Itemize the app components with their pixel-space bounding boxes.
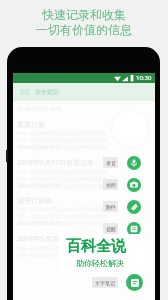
button[interactable]: 文字笔记 (92, 277, 118, 288)
staticText: 附件 (106, 204, 116, 210)
button[interactable]: 拍照 (103, 179, 118, 190)
staticText: 这是一段示例的笔记正文内容文字说明供预览 (17, 246, 107, 252)
staticText: 读书计划表 (17, 196, 52, 205)
button[interactable]: 2018年5月12日 14:30 (17, 106, 114, 152)
staticText: 2018年5月12日 14:30 (17, 144, 62, 150)
staticText: 这是一段示例的笔记正文内容文字说明供预览 (17, 184, 107, 190)
staticText: 10:30 (136, 74, 152, 82)
staticText: 拍照 (106, 182, 116, 188)
staticText: 2018年5月20日清单 (17, 234, 81, 244)
button[interactable]: 2018年5月12日 14:30 (17, 182, 114, 228)
button[interactable]: 2018年5月12日 14:30 (17, 144, 114, 191)
button[interactable]: 录音 (127, 156, 141, 170)
staticText: 2018年5月17日会议记录 (17, 158, 95, 168)
button[interactable]: 安全锁定 (13, 83, 155, 101)
button[interactable]: 拍照 (127, 178, 141, 192)
staticText: 2018年5月12日 14:30 (17, 220, 62, 226)
staticText: 助你轻松解决 (76, 258, 124, 268)
staticText: 录音 (106, 160, 116, 166)
button[interactable]: 文字笔记 (126, 274, 143, 291)
button[interactable]: 提醒 (127, 222, 141, 236)
staticText: 这是一段示例的笔记正文内容文字说明供预览 (17, 221, 107, 227)
button[interactable]: 附件 (127, 200, 141, 214)
staticText: 提醒 (106, 226, 116, 232)
staticText: 这是一段示例的笔记正文内容文字说明供预览 (17, 145, 107, 151)
staticText: 一切有价值的信息 (36, 22, 132, 37)
staticText: 快速记录和收集 (42, 7, 126, 22)
staticText: 这是一段示例的笔记正文内容文字说明供预览 (17, 207, 107, 213)
staticText: 2018年5月12日 14:30 (17, 182, 62, 188)
staticText: 这是一段示例的笔记正文内容文字说明供预览 (17, 253, 107, 259)
staticText: 安全锁定 (35, 88, 59, 96)
staticText: 某某计划 (17, 120, 45, 129)
staticText: 文字笔记 (95, 280, 115, 286)
staticText: 2018年5月12日 14:30 (17, 106, 62, 112)
button[interactable]: 2018年5月12日 14:30 (17, 220, 114, 260)
button[interactable]: 录音 (103, 157, 118, 168)
staticText: 这是一段示例的笔记正文内容文字说明供预览 (17, 177, 107, 183)
staticText: 百科全说 (66, 237, 126, 256)
button[interactable]: 附件 (103, 201, 118, 212)
button[interactable]: 提醒 (103, 223, 118, 234)
